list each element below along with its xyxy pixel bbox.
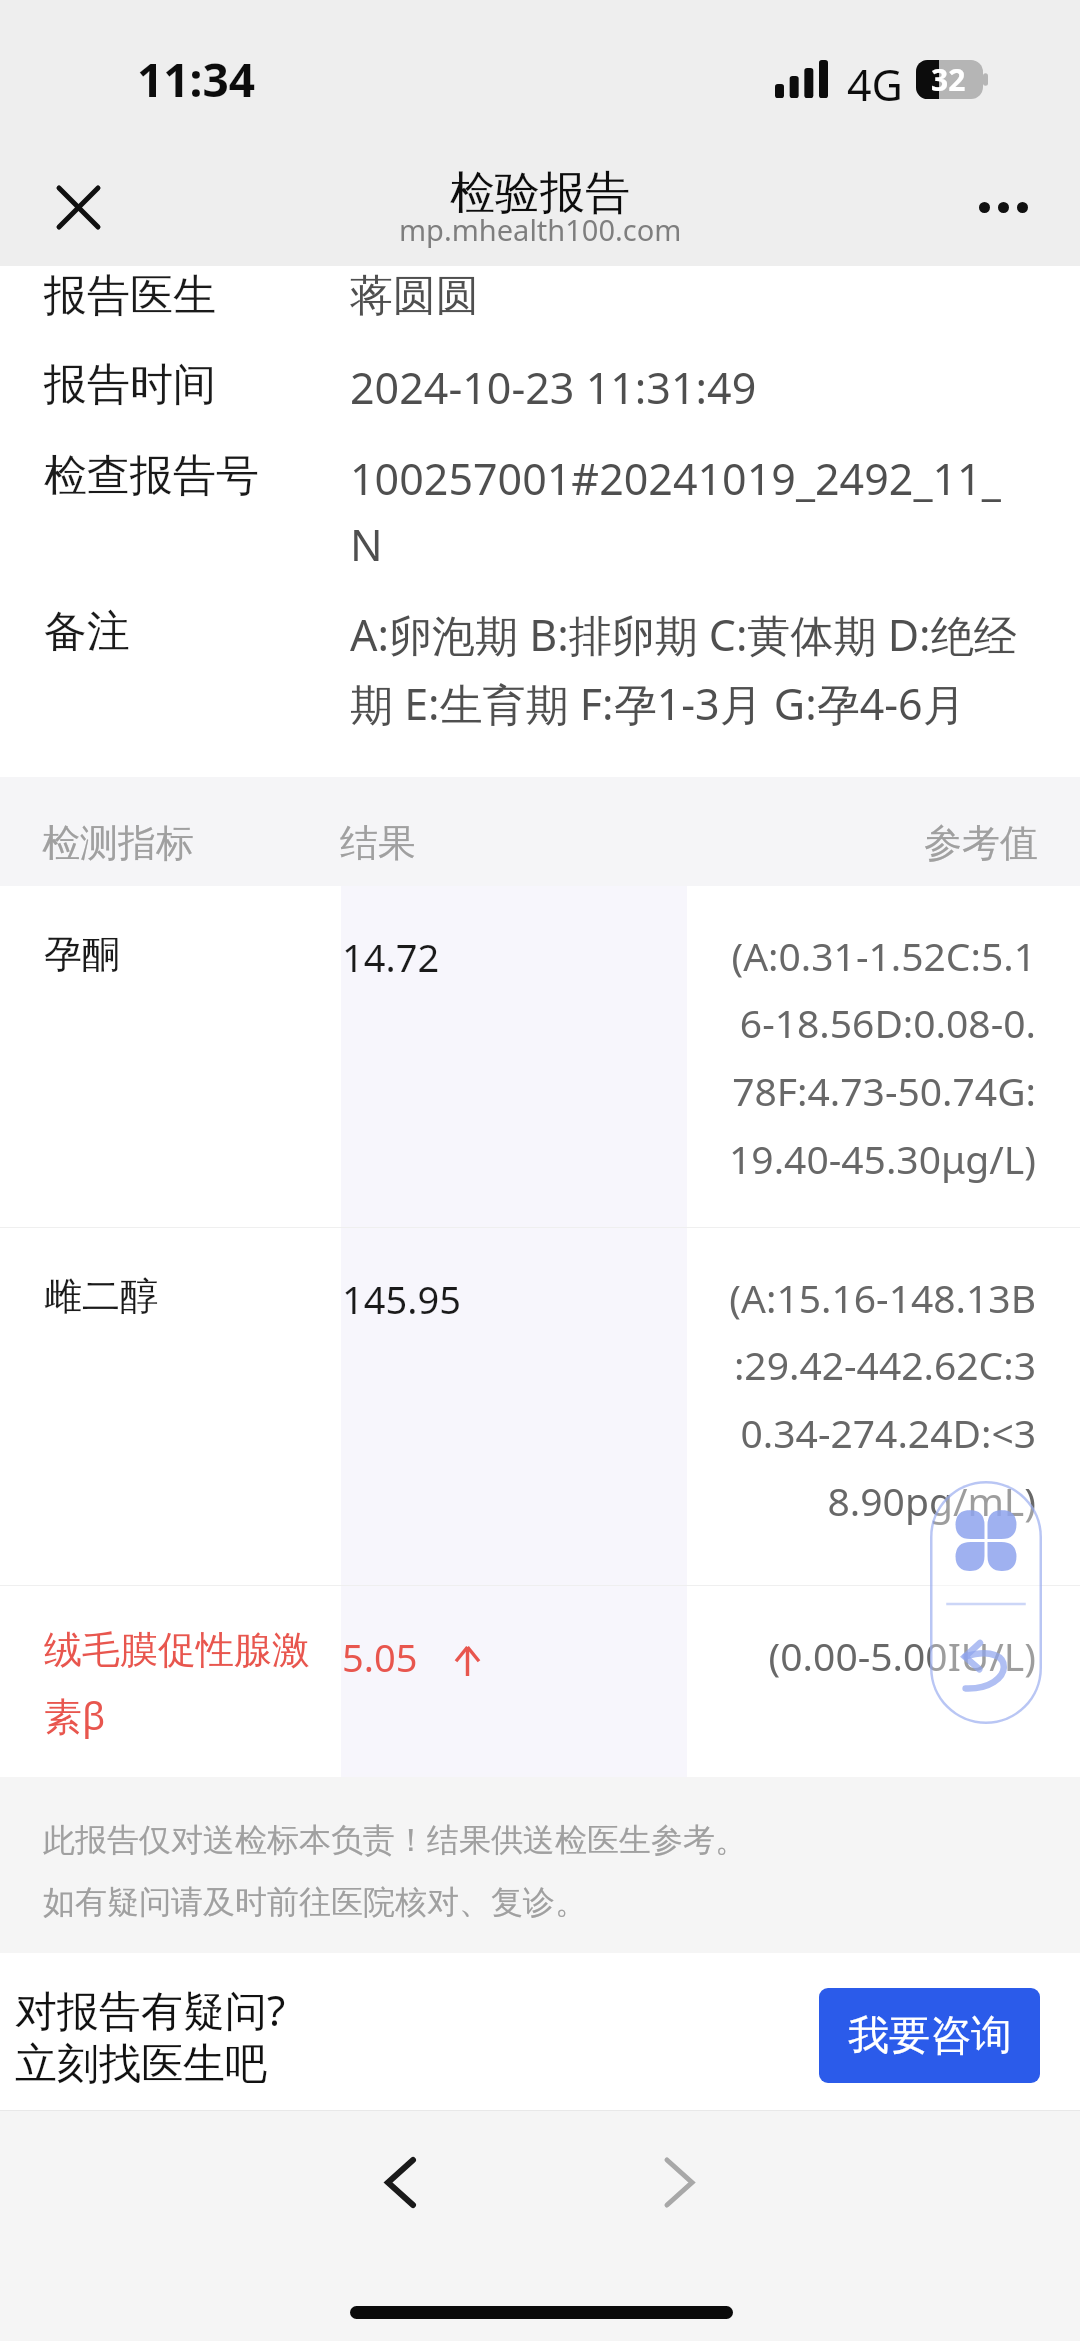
staticText: 145.95 <box>342 1273 461 1325</box>
button[interactable]: Mini program menu <box>930 1481 1042 1724</box>
button[interactable]: 绒毛膜促性腺激素β <box>0 1586 1080 1778</box>
staticText: (0.00-5.00IU/L) <box>722 1629 1036 1682</box>
staticText: 报告医生 <box>44 269 350 323</box>
staticText: (A:0.31-1.52C:5.16-18.56D:0.08-0.78F:4.7… <box>722 929 1036 1186</box>
staticText: 备注 <box>44 605 350 659</box>
staticText: 2024-10-23 11:31:49 <box>350 358 1022 417</box>
staticText: 绒毛膜促性腺激素β <box>44 1626 314 1741</box>
staticText: 立刻找医生吧 <box>15 2038 267 2091</box>
staticText: A:卵泡期 B:排卵期 C:黄体期 D:绝经期 E:生育期 F:孕1-3月 G:… <box>350 605 1022 733</box>
staticText: 5.05 <box>342 1631 418 1683</box>
staticText: 检验报告 <box>450 165 630 222</box>
staticText: 4G <box>847 55 903 114</box>
staticText: 对报告有疑问? <box>15 1981 286 2038</box>
staticText: 此报告仅对送检标本负责！结果供送检医生参考。 <box>43 1820 747 1860</box>
staticText: 我要咨询 <box>848 2010 1012 2062</box>
button[interactable]: Close <box>28 157 128 257</box>
staticText: mp.mhealth100.com <box>399 210 682 249</box>
button[interactable]: 我要咨询 <box>819 1988 1040 2083</box>
staticText: 11:34 <box>137 48 256 111</box>
button[interactable]: 雌二醇 <box>0 1228 1080 1585</box>
staticText: 雌二醇 <box>44 1272 314 1320</box>
button[interactable]: Forward <box>624 2127 735 2238</box>
staticText: 参考值 <box>924 819 1038 867</box>
staticText: 14.72 <box>342 931 440 983</box>
staticText: 结果 <box>340 819 416 867</box>
staticText: 检测指标 <box>42 819 194 867</box>
staticText: 如有疑问请及时前往医院核对、复诊。 <box>43 1882 587 1922</box>
button[interactable]: Back <box>345 2127 456 2238</box>
staticText: 蒋圆圆 <box>350 269 1022 323</box>
staticText: 32 <box>931 59 966 98</box>
button[interactable]: 孕酮 <box>0 886 1080 1227</box>
staticText: 检查报告号 <box>44 449 350 503</box>
staticText: (A:15.16-148.13B:29.42-442.62C:30.34-274… <box>722 1271 1036 1528</box>
button[interactable]: More options <box>953 157 1053 257</box>
staticText: 报告时间 <box>44 358 350 412</box>
staticText: 100257001#20241019_2492_11_N <box>350 449 1022 573</box>
staticText: 孕酮 <box>44 930 314 978</box>
